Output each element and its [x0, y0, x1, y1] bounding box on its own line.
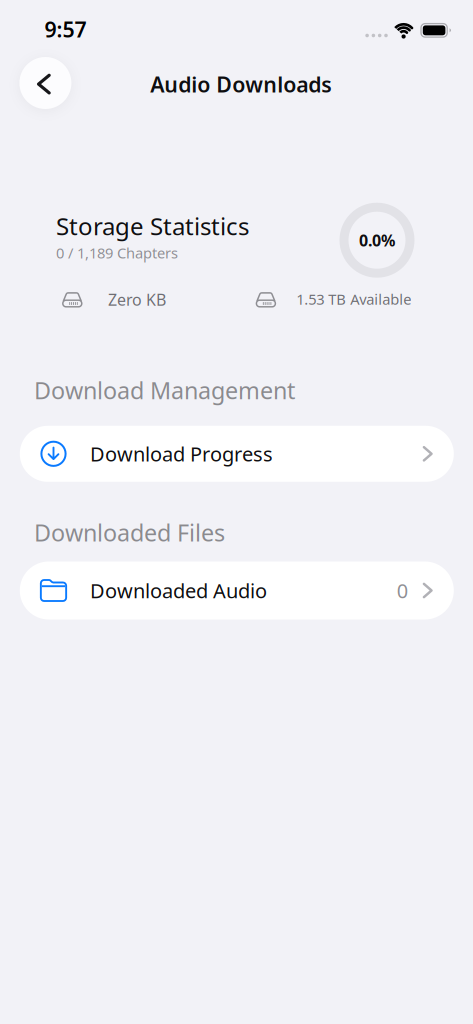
staticText: Zero KB [108, 289, 166, 310]
staticText: 0.0% [359, 230, 395, 251]
staticText: 0 [397, 577, 408, 604]
staticText: Downloaded Audio [90, 577, 267, 604]
button[interactable]: Back [19, 57, 71, 109]
staticText: 0 / 1,189 Chapters [56, 243, 178, 262]
staticText: 1.53 TB Available [296, 289, 411, 309]
staticText: 9:57 [44, 15, 86, 43]
button[interactable]: Downloaded Audio [20, 561, 454, 619]
staticText: Storage Statistics [56, 210, 249, 242]
button[interactable]: Download Progress [20, 426, 454, 482]
staticText: Downloaded Files [34, 516, 225, 548]
staticText: Audio Downloads [150, 70, 332, 98]
staticText: Download Progress [90, 440, 273, 467]
staticText: Download Management [34, 374, 295, 406]
